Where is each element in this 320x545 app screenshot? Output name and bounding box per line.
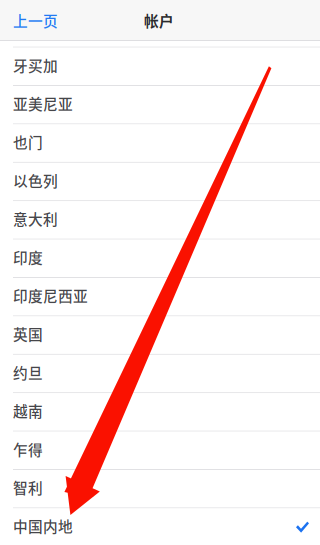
staticText: 乍得 bbox=[13, 438, 43, 460]
staticText: 印度尼西亚 bbox=[13, 285, 88, 306]
button[interactable]: 亚美尼亚 bbox=[0, 86, 320, 124]
button[interactable]: 越南 bbox=[0, 393, 320, 432]
button[interactable]: 英国 bbox=[0, 316, 320, 355]
button[interactable]: 智利 bbox=[0, 470, 320, 508]
button[interactable]: 上一页 bbox=[0, 0, 68, 41]
staticText: 牙买加 bbox=[13, 54, 58, 76]
button[interactable]: 约旦 bbox=[0, 355, 320, 393]
button[interactable]: 中国内地 bbox=[0, 508, 320, 545]
staticText: 中国内地 bbox=[13, 515, 73, 536]
staticText: 也门 bbox=[13, 131, 43, 152]
staticText: 帐户 bbox=[144, 10, 174, 31]
staticText: 越南 bbox=[13, 400, 43, 421]
staticText: 印度 bbox=[13, 246, 43, 268]
button[interactable]: 印度尼西亚 bbox=[0, 278, 320, 316]
button[interactable]: 以色列 bbox=[0, 163, 320, 201]
staticText: 亚美尼亚 bbox=[13, 93, 73, 114]
button[interactable]: 牙买加 bbox=[0, 48, 320, 86]
staticText: 意大利 bbox=[13, 208, 58, 229]
button[interactable]: 意大利 bbox=[0, 201, 320, 240]
button[interactable]: 也门 bbox=[0, 124, 320, 163]
staticText: 智利 bbox=[13, 477, 43, 498]
staticText: 以色列 bbox=[13, 170, 58, 191]
button[interactable]: 乍得 bbox=[0, 432, 320, 470]
staticText: 上一页 bbox=[13, 10, 58, 31]
staticText: 英国 bbox=[13, 323, 43, 344]
button[interactable]: 印度 bbox=[0, 240, 320, 278]
staticText: 约旦 bbox=[13, 362, 43, 383]
